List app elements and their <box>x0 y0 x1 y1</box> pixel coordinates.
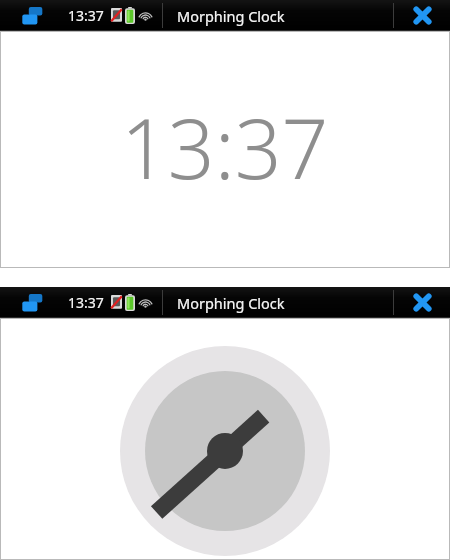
button[interactable]: Close <box>394 0 450 31</box>
button[interactable]: Close <box>394 287 450 318</box>
staticText: Morphing Clock <box>177 6 285 26</box>
staticText: 13:37 <box>68 6 104 25</box>
staticText: 13:37 <box>121 91 329 203</box>
staticText: 13:37 <box>68 293 104 312</box>
staticText: Morphing Clock <box>177 293 285 313</box>
button[interactable]: Task switcher <box>0 0 68 31</box>
button[interactable]: Task switcher <box>0 287 68 318</box>
